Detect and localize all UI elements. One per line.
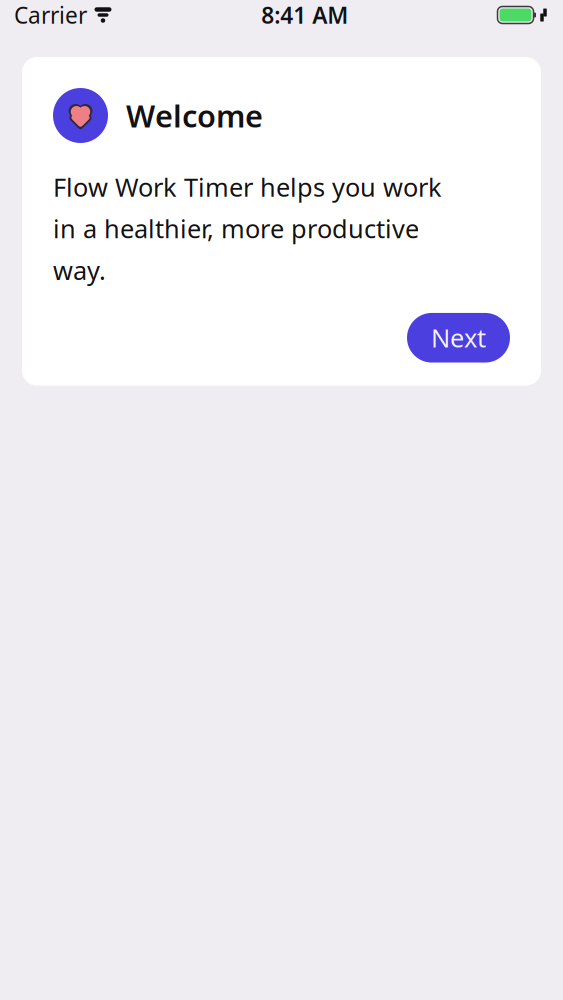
staticText: Welcome [126,95,263,136]
button[interactable]: Next [407,313,510,362]
staticText: Carrier [14,0,87,30]
staticText: Flow Work Timer helps you work in a heal… [53,170,442,287]
staticText: Next [431,321,486,354]
staticText: 8:41 AM [261,0,348,30]
